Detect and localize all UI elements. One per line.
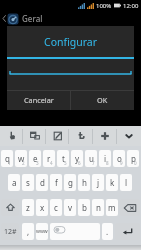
staticText: 8: [106, 160, 109, 166]
button[interactable]: Tumblr: [69, 126, 93, 146]
button[interactable]: w: [15, 150, 27, 167]
button[interactable]: l: [120, 174, 132, 191]
button[interactable]: f: [50, 174, 62, 191]
button[interactable]: y: [71, 150, 83, 167]
staticText: d: [40, 177, 45, 188]
button[interactable]: Enter: [115, 223, 140, 240]
staticText: Cancelar: [24, 95, 54, 105]
button[interactable]: m: [106, 199, 118, 216]
staticText: n: [96, 202, 101, 213]
staticText: www: [36, 228, 48, 235]
staticText: .: [106, 226, 109, 237]
staticText: i: [104, 153, 107, 164]
staticText: 5: [64, 160, 67, 166]
button[interactable]: p: [127, 150, 139, 167]
button[interactable]: r: [43, 150, 55, 167]
button[interactable]: Back: [0, 11, 141, 26]
staticText: w: [18, 153, 25, 164]
staticText: e: [33, 153, 38, 164]
button[interactable]: i: [99, 150, 111, 167]
staticText: m: [108, 202, 116, 213]
staticText: 100%: [96, 2, 112, 10]
staticText: h: [82, 177, 87, 188]
button[interactable]: n: [92, 199, 104, 216]
staticText: g: [68, 177, 73, 188]
staticText: 7: [92, 160, 95, 166]
staticText: f: [55, 177, 58, 188]
staticText: 3: [36, 160, 39, 166]
button[interactable]: Hide keyboard: [117, 126, 141, 146]
button[interactable]: g: [64, 174, 76, 191]
button[interactable]: OK: [71, 90, 134, 110]
button[interactable]: h: [78, 174, 90, 191]
button[interactable]: t: [57, 150, 69, 167]
staticText: ,: [27, 226, 30, 237]
button[interactable]: k: [106, 174, 118, 191]
button[interactable]: c: [50, 199, 62, 216]
button[interactable]: Space: [50, 223, 100, 240]
staticText: y: [75, 153, 80, 164]
staticText: a: [12, 177, 17, 188]
staticText: k: [110, 177, 115, 188]
staticText: Configurar: [44, 35, 98, 49]
button[interactable]: b: [78, 199, 90, 216]
staticText: 0: [134, 160, 137, 166]
other: Back: [2, 15, 6, 22]
button[interactable]: Cursor: [0, 126, 23, 146]
button[interactable]: Shift: [1, 199, 19, 216]
staticText: v: [68, 202, 73, 213]
staticText: Geral: [22, 13, 43, 24]
staticText: u: [89, 153, 94, 164]
button[interactable]: Symbols: [1, 223, 19, 240]
staticText: o: [117, 153, 122, 164]
staticText: 12#: [4, 227, 17, 237]
staticText: 1: [8, 160, 11, 166]
staticText: s: [26, 177, 30, 188]
button[interactable]: ,: [22, 223, 34, 240]
button[interactable]: d: [36, 174, 48, 191]
button[interactable]: Compose: [46, 126, 69, 146]
button[interactable]: www: [36, 223, 48, 240]
button[interactable]: Clipboard: [23, 126, 46, 146]
button[interactable]: Backspace: [120, 199, 140, 216]
button[interactable]: z: [22, 199, 34, 216]
button[interactable]: .: [102, 223, 113, 240]
button[interactable]: x: [36, 199, 48, 216]
staticText: p: [131, 153, 136, 164]
staticText: j: [97, 177, 100, 188]
button[interactable]: q: [1, 150, 13, 167]
button[interactable]: s: [22, 174, 34, 191]
button[interactable]: Move: [93, 126, 117, 146]
staticText: b: [82, 202, 87, 213]
staticText: OK: [97, 95, 108, 105]
staticText: 4: [50, 160, 53, 166]
button[interactable]: u: [85, 150, 97, 167]
staticText: 9: [120, 160, 123, 166]
button[interactable]: e: [29, 150, 41, 167]
staticText: 12:00: [123, 2, 139, 10]
staticText: q: [5, 153, 10, 164]
staticText: c: [54, 202, 58, 213]
button[interactable]: o: [113, 150, 125, 167]
staticText: l: [125, 177, 128, 188]
staticText: 6: [78, 160, 81, 166]
staticText: z: [26, 202, 30, 213]
button[interactable]: Cancelar: [7, 90, 70, 110]
staticText: t: [62, 153, 65, 164]
staticText: r: [47, 153, 51, 164]
button[interactable]: j: [92, 174, 104, 191]
staticText: x: [40, 202, 45, 213]
staticText: 2: [22, 160, 25, 166]
button[interactable]: a: [8, 174, 20, 191]
button[interactable]: v: [64, 199, 76, 216]
